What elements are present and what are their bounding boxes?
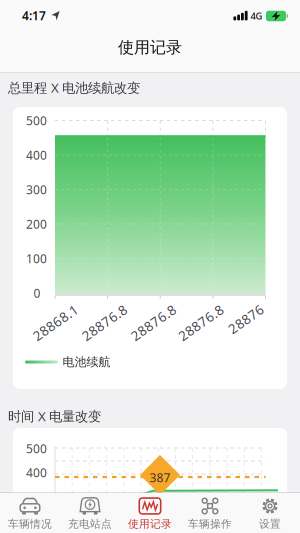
staticText: 28876.8 bbox=[175, 314, 227, 331]
staticText: 设置 bbox=[259, 517, 281, 530]
staticText: 387 bbox=[149, 469, 170, 485]
staticText: 4:17 bbox=[22, 7, 46, 23]
staticText: 100 bbox=[26, 250, 47, 266]
staticText: 400 bbox=[26, 464, 47, 480]
staticText: 300 bbox=[26, 181, 47, 197]
staticText: 400 bbox=[26, 147, 47, 163]
staticText: 总里程 X 电池续航改变 bbox=[8, 79, 140, 96]
staticText: 电池续航 bbox=[62, 355, 110, 369]
staticText: 28876 bbox=[226, 310, 266, 328]
staticText: 500 bbox=[26, 112, 47, 128]
staticText: 使用记录 bbox=[118, 38, 182, 57]
staticText: 500 bbox=[26, 440, 47, 456]
button[interactable]: 使用记录 bbox=[120, 493, 180, 533]
staticText: 0 bbox=[33, 285, 40, 301]
staticText: 200 bbox=[26, 216, 47, 232]
staticText: 4G bbox=[250, 10, 262, 22]
staticText: 使用记录 bbox=[128, 517, 172, 530]
staticText: 车辆操作 bbox=[188, 517, 232, 530]
button[interactable]: 车辆操作 bbox=[180, 493, 240, 533]
button[interactable]: 车辆情况 bbox=[0, 493, 60, 533]
button[interactable]: 充电站点 bbox=[60, 493, 120, 533]
staticText: 时间 X 电量改变 bbox=[8, 407, 101, 425]
staticText: 车辆情况 bbox=[8, 517, 52, 530]
staticText: 28876.8 bbox=[78, 314, 130, 331]
staticText: 28876.8 bbox=[127, 314, 179, 331]
staticText: 28868.1 bbox=[29, 314, 81, 331]
button[interactable]: 设置 bbox=[240, 493, 300, 533]
staticText: 充电站点 bbox=[68, 517, 112, 530]
